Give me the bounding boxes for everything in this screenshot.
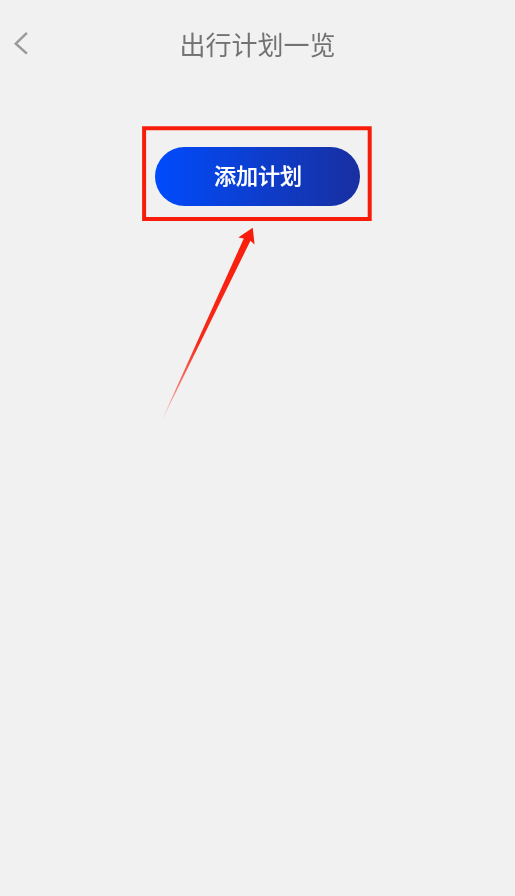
staticText: 添加计划 xyxy=(214,158,303,190)
button[interactable]: 添加计划 xyxy=(155,147,360,206)
staticText: 出行计划一览 xyxy=(0,25,515,63)
button[interactable]: Back xyxy=(0,20,44,64)
